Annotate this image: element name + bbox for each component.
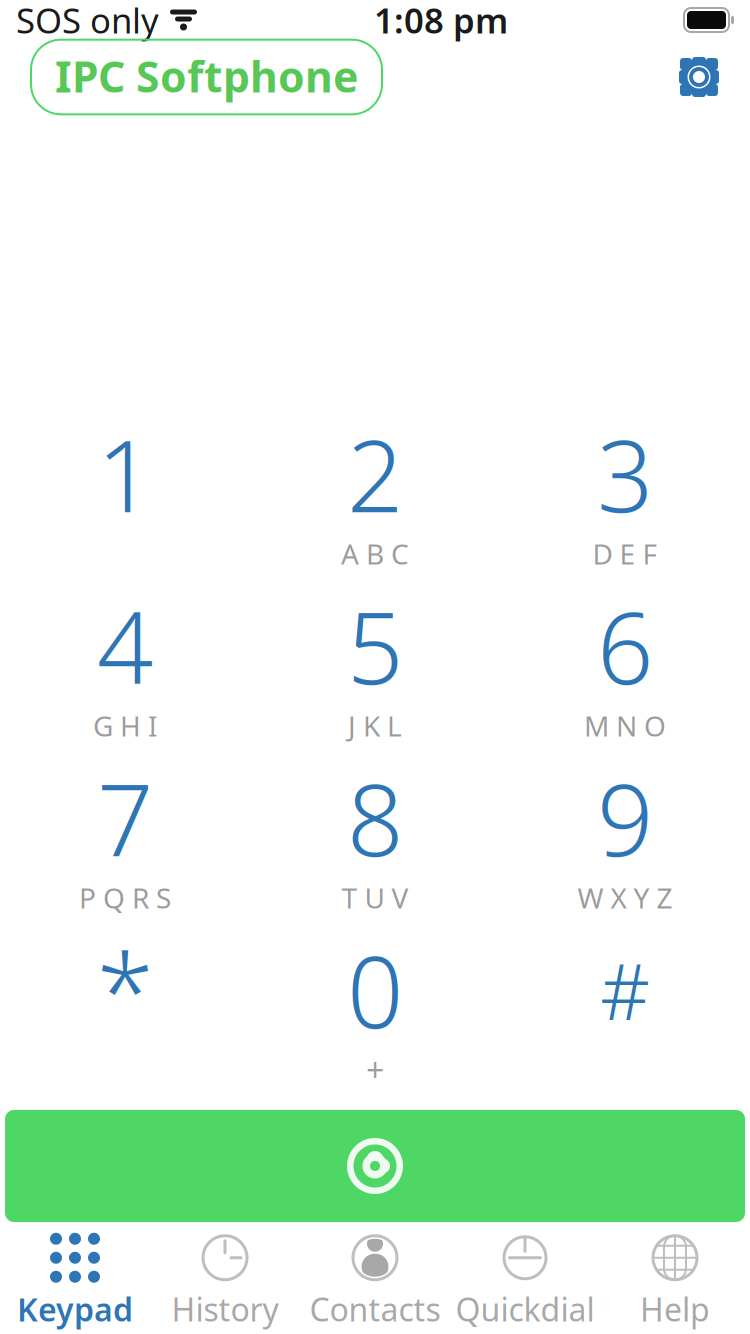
staticText: M N O (584, 707, 666, 744)
button[interactable]: 5 (250, 574, 500, 746)
staticText: P Q R S (79, 879, 171, 916)
staticText: A B C (341, 535, 409, 572)
button[interactable]: 7 (0, 746, 250, 918)
button[interactable]: 3 (500, 402, 750, 574)
staticText: SOS only (16, 0, 159, 43)
staticText: T U V (341, 879, 408, 916)
staticText: W X Y Z (577, 879, 672, 916)
button[interactable]: 0 (250, 918, 500, 1090)
staticText: Contacts (309, 1288, 440, 1330)
staticText: 0 (347, 924, 403, 1055)
button[interactable]: 1 (0, 402, 250, 574)
button[interactable]: History (150, 1232, 300, 1332)
staticText: # (600, 939, 650, 1041)
button[interactable]: Help (600, 1232, 750, 1332)
staticText: G H I (93, 707, 157, 744)
staticText: 8 (347, 752, 403, 883)
staticText: * (96, 921, 153, 1059)
staticText: + (366, 1048, 384, 1091)
button[interactable]: Settings (675, 53, 723, 101)
staticText: Quickdial (455, 1288, 594, 1330)
staticText: D E F (592, 535, 657, 572)
button[interactable]: 8 (250, 746, 500, 918)
staticText: 6 (597, 580, 653, 711)
staticText: 1 (97, 408, 153, 539)
staticText: Help (640, 1288, 710, 1330)
button[interactable]: 4 (0, 574, 250, 746)
staticText: 5 (347, 580, 403, 711)
staticText: IPC Softphone (55, 48, 358, 104)
staticText: 1:08 pm (374, 0, 508, 43)
button[interactable]: IPC Softphone (31, 40, 382, 114)
staticText: 2 (347, 408, 403, 539)
button[interactable]: Contacts (300, 1232, 450, 1332)
staticText: J K L (348, 707, 402, 744)
staticText: History (171, 1288, 278, 1330)
staticText: 7 (97, 752, 153, 883)
button[interactable]: # (500, 918, 750, 1090)
staticText: 9 (597, 752, 653, 883)
button[interactable]: Keypad (0, 1232, 150, 1332)
button[interactable]: * (0, 918, 250, 1090)
button[interactable]: 9 (500, 746, 750, 918)
staticText: Keypad (17, 1288, 133, 1330)
staticText: 4 (97, 580, 153, 711)
button[interactable]: 2 (250, 402, 500, 574)
button[interactable]: Call (5, 1110, 745, 1222)
button[interactable]: Quickdial (450, 1232, 600, 1332)
button[interactable]: 6 (500, 574, 750, 746)
staticText: 3 (597, 408, 653, 539)
